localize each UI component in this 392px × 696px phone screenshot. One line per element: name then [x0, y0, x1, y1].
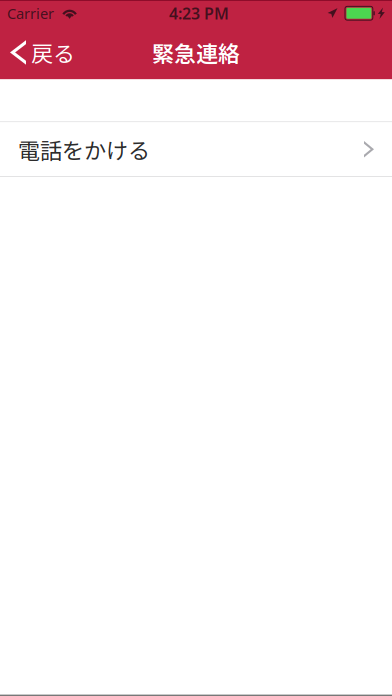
button[interactable]: 戻る — [0, 25, 83, 79]
staticText: 戻る — [31, 36, 75, 68]
staticText: Carrier — [7, 3, 54, 23]
staticText: 4:23 PM — [169, 3, 229, 24]
staticText: 電話をかける — [18, 133, 150, 165]
button[interactable]: 電話をかける — [0, 122, 392, 176]
staticText: 緊急連絡 — [152, 36, 240, 68]
